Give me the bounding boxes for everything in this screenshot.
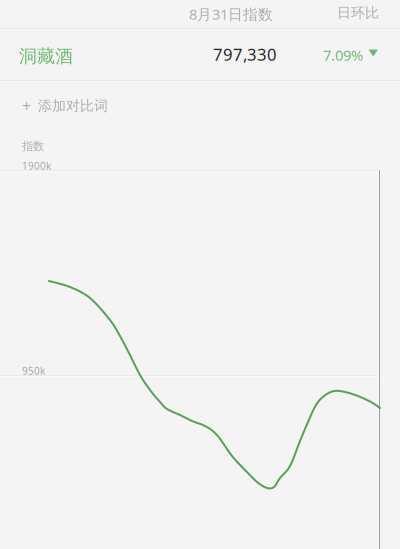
staticText: 指数	[22, 139, 44, 153]
staticText: +	[22, 95, 31, 117]
staticText: 8月31日指数	[189, 4, 273, 24]
button[interactable]: +	[0, 0, 400, 549]
staticText: 797,330	[213, 43, 277, 66]
staticText: 950k	[22, 364, 45, 378]
staticText: 1900k	[22, 159, 51, 173]
staticText: 7.09%	[323, 45, 363, 65]
staticText: 日环比	[337, 4, 379, 22]
button[interactable]: 洞藏酒	[0, 0, 400, 549]
staticText: 添加对比词	[38, 97, 108, 115]
staticText: 洞藏酒	[19, 45, 73, 68]
